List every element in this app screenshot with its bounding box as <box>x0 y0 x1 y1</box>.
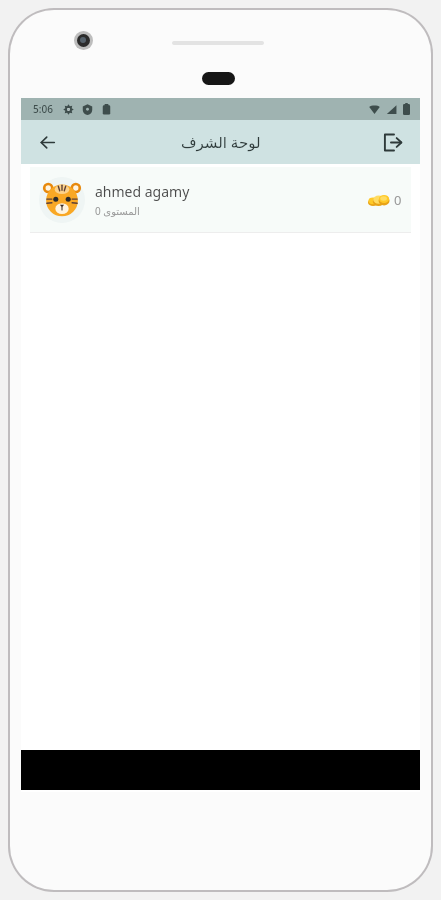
button[interactable]: ahmed agamy <box>30 167 411 233</box>
staticText: لوحة الشرف <box>181 132 261 152</box>
staticText: 0 <box>394 191 402 209</box>
button[interactable]: Back <box>27 122 67 162</box>
button[interactable]: Logout <box>372 122 412 162</box>
staticText: 5:06 <box>33 102 53 116</box>
staticText: ahmed agamy <box>95 182 190 201</box>
staticText: المستوى 0 <box>95 204 140 218</box>
